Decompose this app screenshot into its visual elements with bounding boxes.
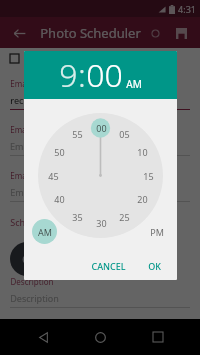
staticText: recipient@mail.com (10, 94, 96, 106)
staticText: AM (38, 226, 52, 238)
staticText: CANCEL (91, 260, 126, 272)
staticText: 15 (143, 170, 154, 182)
staticText: 10 (137, 146, 148, 158)
button[interactable]: OK (142, 256, 167, 276)
button[interactable]: Back (28, 322, 58, 352)
button[interactable]: Recents (143, 322, 173, 352)
button[interactable]: 00 (92, 121, 110, 135)
staticText: Description (10, 292, 59, 304)
button[interactable]: Add photo (10, 242, 44, 276)
button[interactable]: Back (8, 22, 30, 44)
staticText: Email subject (10, 140, 66, 152)
button[interactable]: 05 (115, 127, 133, 141)
staticText: Email recipient (10, 78, 66, 89)
button[interactable]: 35 (68, 210, 86, 224)
button[interactable]: PM (144, 219, 169, 244)
button[interactable]: 9 (59, 53, 78, 97)
button[interactable]: 15 (139, 169, 157, 183)
button[interactable]: 40 (50, 192, 68, 206)
button[interactable]: Save (170, 22, 192, 44)
staticText: 25 (119, 211, 130, 223)
button[interactable]: CANCEL (85, 256, 132, 276)
staticText: Photo Scheduler (40, 24, 141, 42)
button[interactable]: AM (32, 219, 57, 244)
button[interactable]: 00 (86, 53, 123, 97)
button[interactable]: 25 (115, 210, 133, 224)
button[interactable]: 55 (68, 127, 86, 141)
staticText: 55 (72, 128, 83, 140)
button[interactable]: 30 (92, 216, 110, 230)
staticText: 45 (48, 170, 59, 182)
staticText: Email subject (10, 124, 60, 135)
staticText: 00 (96, 122, 107, 134)
button[interactable]: 45 (44, 169, 62, 183)
staticText: OK (148, 260, 161, 272)
staticText: PM (150, 226, 164, 238)
staticText: 35 (72, 211, 83, 223)
staticText: 9 (59, 53, 78, 97)
staticText: Email body (10, 170, 52, 181)
button[interactable]: Attach (144, 22, 166, 44)
staticText: 50 (54, 146, 65, 158)
button[interactable]: 10 (133, 145, 151, 159)
staticText: Schedule (10, 216, 49, 228)
staticText: 30 (96, 217, 107, 229)
staticText: 20 (137, 193, 148, 205)
staticText: : (78, 53, 86, 97)
staticText: 00 (86, 53, 123, 97)
staticText: AM (126, 77, 142, 91)
button[interactable]: 50 (50, 145, 68, 159)
staticText: Description (10, 276, 54, 287)
button[interactable]: AM (126, 77, 142, 91)
button[interactable]: Home (85, 322, 115, 352)
button[interactable]: 20 (133, 192, 151, 206)
staticText: 05 (119, 128, 130, 140)
staticText: Email body (10, 186, 57, 198)
staticText: 40 (54, 193, 65, 205)
staticText: 4:31 (178, 3, 196, 15)
